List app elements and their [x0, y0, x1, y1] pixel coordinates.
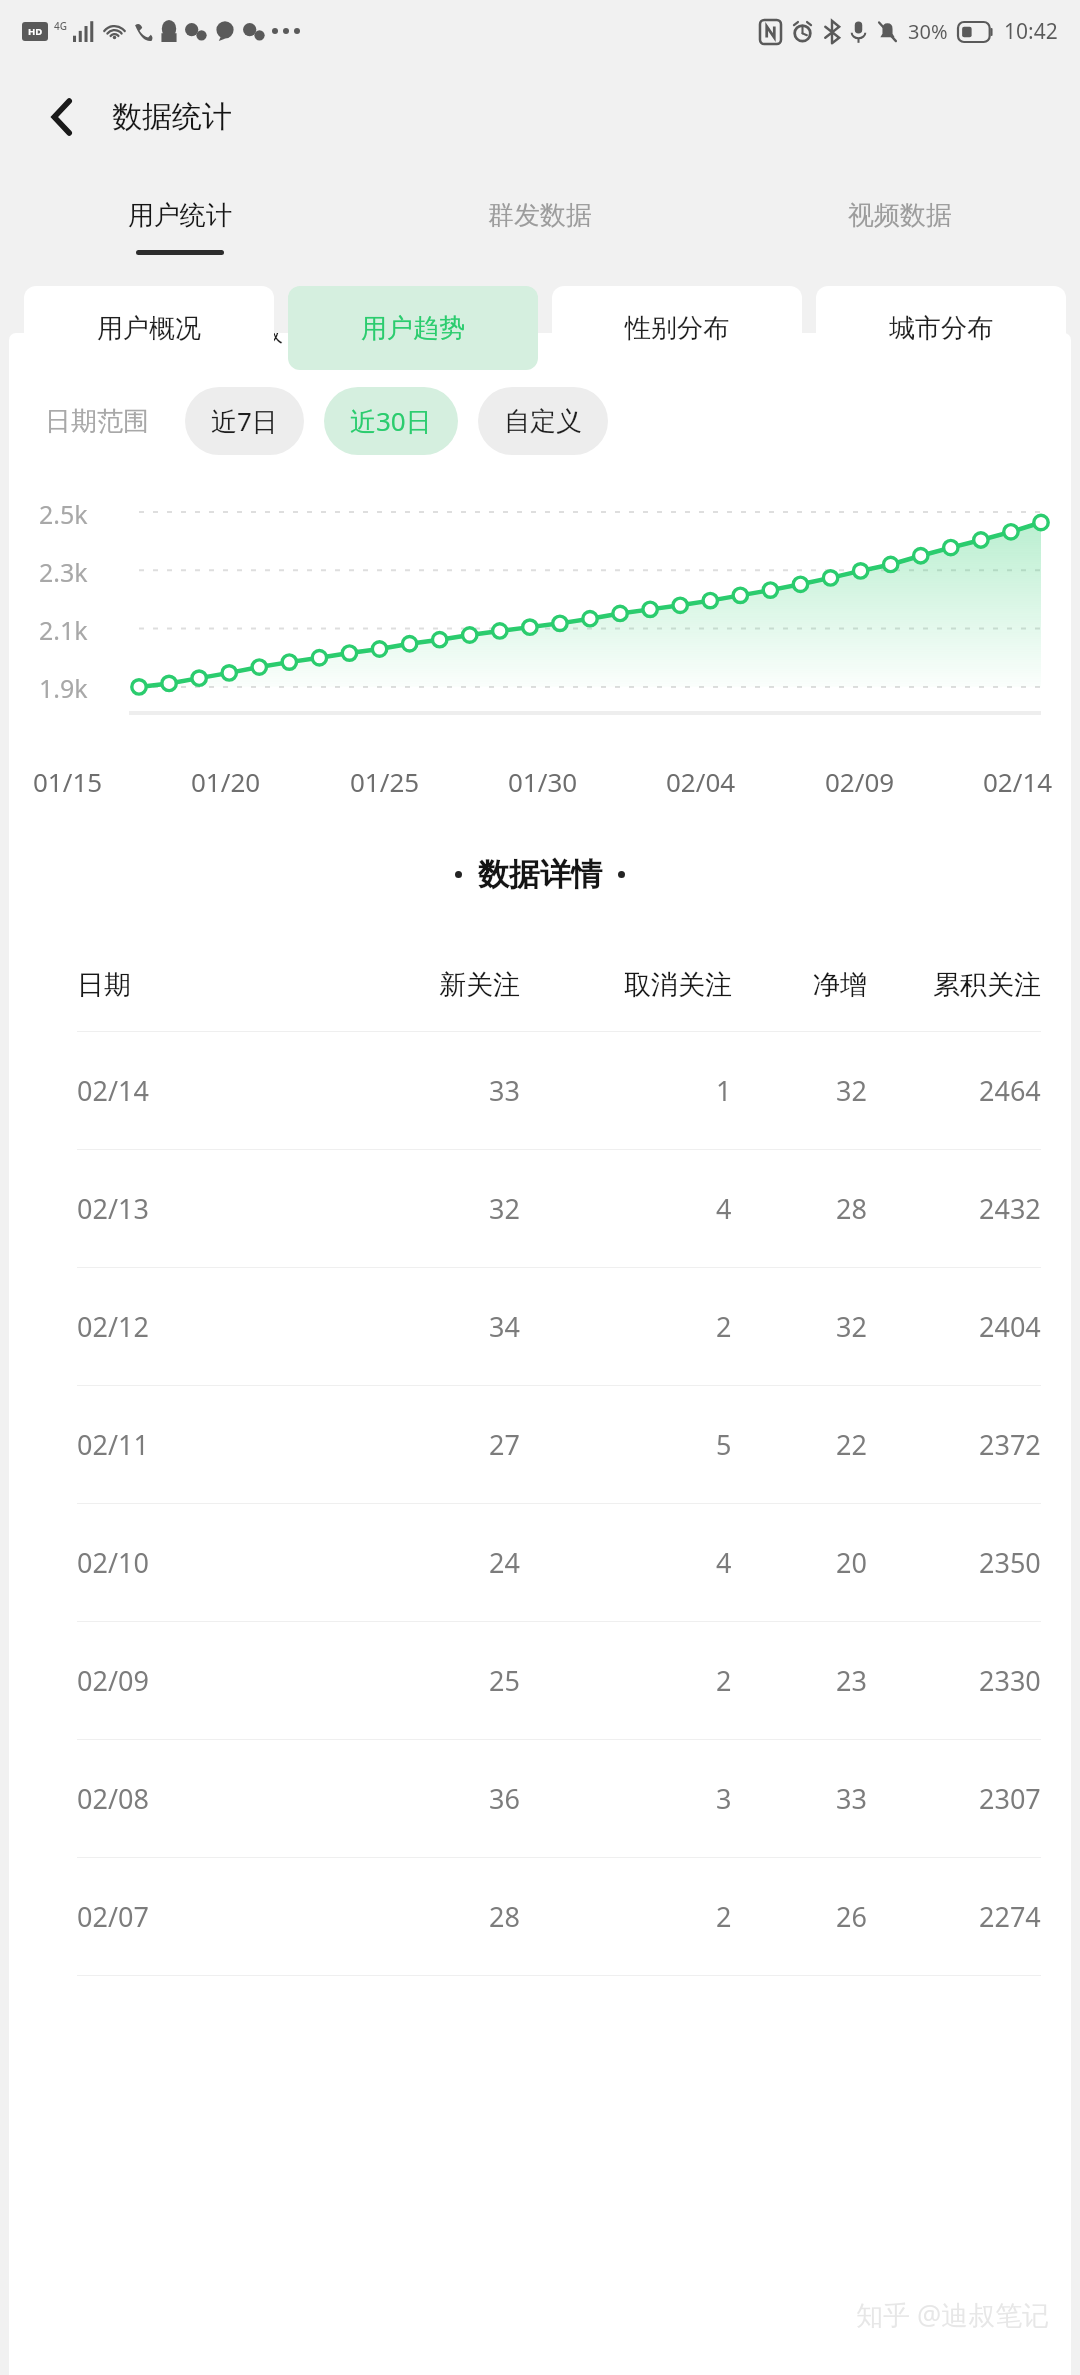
staticText: 2464: [979, 1072, 1041, 1109]
staticText: 2.1k: [39, 613, 88, 647]
button[interactable]: 用户概况: [24, 286, 274, 370]
staticText: 5: [716, 1426, 732, 1463]
staticText: 用户概况: [97, 312, 201, 345]
staticText: 数据统计: [112, 98, 232, 136]
button[interactable]: Back: [34, 89, 90, 145]
staticText: 用户总数: [183, 333, 283, 347]
staticText: 数据详情: [478, 855, 602, 894]
staticText: 数据关注: [45, 333, 145, 347]
staticText: 用户趋势: [361, 312, 465, 345]
button[interactable]: 02/09: [9, 1622, 1071, 1739]
staticText: 取消关注: [624, 968, 732, 1002]
staticText: 2404: [979, 1308, 1041, 1345]
staticText: 01/25: [350, 764, 420, 799]
staticText: 32: [836, 1308, 867, 1345]
button[interactable]: 群发数据: [360, 172, 720, 282]
button[interactable]: 02/14: [9, 1032, 1071, 1149]
staticText: 1.9k: [39, 671, 88, 705]
staticText: 性别分布: [625, 312, 729, 345]
button[interactable]: 性别分布: [552, 286, 802, 370]
staticText: 4: [716, 1544, 732, 1581]
button[interactable]: 自定义: [478, 387, 608, 455]
staticText: 30%: [908, 18, 948, 45]
button[interactable]: 02/13: [9, 1150, 1071, 1267]
button[interactable]: 视频数据: [720, 172, 1080, 282]
staticText: 33: [489, 1072, 520, 1109]
staticText: 02/09: [825, 764, 895, 799]
staticText: 22: [836, 1426, 867, 1463]
staticText: 02/14: [77, 1072, 149, 1109]
staticText: 自定义: [504, 405, 582, 438]
staticText: 02/04: [666, 764, 736, 799]
button[interactable]: 02/11: [9, 1386, 1071, 1503]
staticText: 20: [836, 1544, 867, 1581]
staticText: 用户统计: [128, 199, 232, 232]
staticText: 28: [489, 1898, 520, 1935]
button[interactable]: 用户统计: [0, 172, 360, 282]
staticText: 33: [836, 1780, 867, 1817]
button[interactable]: 城市分布: [816, 286, 1066, 370]
staticText: 2307: [979, 1780, 1041, 1817]
staticText: 28: [836, 1190, 867, 1227]
staticText: 27: [489, 1426, 520, 1463]
button[interactable]: 近7日: [185, 387, 304, 455]
staticText: 10:42: [1004, 17, 1058, 46]
staticText: 群发数据: [488, 199, 592, 232]
staticText: 日期: [77, 968, 131, 1002]
staticText: 36: [489, 1780, 520, 1817]
staticText: 3: [716, 1780, 732, 1817]
staticText: 02/08: [77, 1780, 149, 1817]
button[interactable]: 近30日: [324, 387, 458, 455]
staticText: 近7日: [211, 403, 278, 439]
staticText: 2.3k: [39, 555, 88, 589]
staticText: 2274: [979, 1898, 1041, 1935]
staticText: 4: [716, 1190, 732, 1227]
staticText: 02/13: [77, 1190, 149, 1227]
staticText: 城市分布: [889, 312, 993, 345]
staticText: 2330: [979, 1662, 1041, 1699]
staticText: 26: [836, 1898, 867, 1935]
staticText: 23: [836, 1662, 867, 1699]
staticText: HD: [28, 25, 43, 38]
staticText: 02/11: [77, 1426, 149, 1463]
staticText: 32: [836, 1072, 867, 1109]
staticText: 累积关注: [933, 968, 1041, 1002]
staticText: 4G: [54, 19, 67, 33]
staticText: 01/20: [191, 764, 261, 799]
staticText: 02/09: [77, 1662, 149, 1699]
staticText: 新关注: [439, 968, 520, 1002]
button[interactable]: 02/10: [9, 1504, 1071, 1621]
button[interactable]: 02/07: [9, 1858, 1071, 1975]
staticText: 2372: [979, 1426, 1041, 1463]
staticText: 2: [716, 1662, 732, 1699]
staticText: 日期范围: [45, 405, 149, 438]
staticText: 知乎 @迪叔笔记: [856, 2296, 1050, 2333]
staticText: 1: [716, 1072, 732, 1109]
staticText: 视频数据: [848, 199, 952, 232]
staticText: 24: [489, 1544, 520, 1581]
staticText: 02/10: [77, 1544, 149, 1581]
staticText: 2.5k: [39, 497, 88, 531]
button[interactable]: 用户趋势: [288, 286, 538, 370]
staticText: 净增: [813, 968, 867, 1002]
staticText: 2: [716, 1898, 732, 1935]
button[interactable]: 02/12: [9, 1268, 1071, 1385]
staticText: 02/07: [77, 1898, 149, 1935]
button[interactable]: 02/08: [9, 1740, 1071, 1857]
staticText: 32: [489, 1190, 520, 1227]
staticText: 34: [489, 1308, 520, 1345]
staticText: 近30日: [350, 403, 432, 439]
staticText: 25: [489, 1662, 520, 1699]
staticText: 2: [716, 1308, 732, 1345]
staticText: 2350: [979, 1544, 1041, 1581]
staticText: 02/12: [77, 1308, 149, 1345]
staticText: 01/15: [33, 764, 103, 799]
staticText: 2432: [979, 1190, 1041, 1227]
staticText: 02/14: [983, 764, 1053, 799]
staticText: 01/30: [508, 764, 578, 799]
